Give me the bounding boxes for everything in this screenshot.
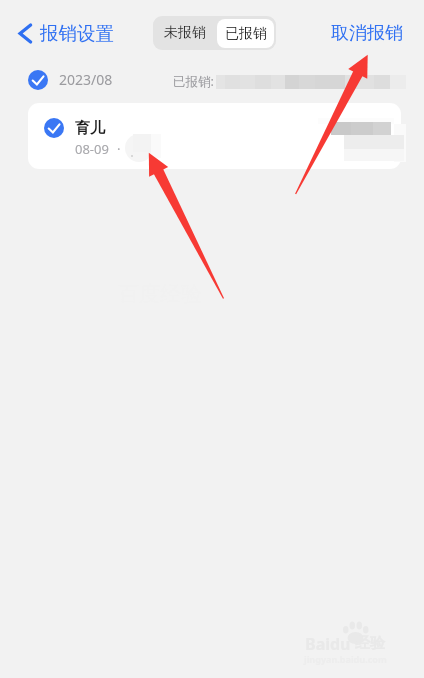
staticText: 育儿	[75, 119, 105, 138]
staticText: 经验	[355, 634, 385, 653]
staticText: 已报销	[225, 25, 267, 43]
other: Back	[16, 22, 33, 45]
staticText: ·	[117, 140, 121, 158]
button[interactable]	[28, 70, 48, 90]
button[interactable]: 育儿	[28, 103, 401, 169]
staticText: 取消报销	[331, 22, 403, 45]
staticText: Baidu	[305, 633, 351, 655]
staticText: 08-09	[75, 140, 109, 158]
button[interactable]: 取消报销	[331, 16, 403, 50]
staticText: 未报销	[164, 24, 206, 42]
button[interactable]: Back	[16, 16, 114, 50]
staticText: 报销设置	[40, 22, 114, 45]
staticText: 2023/08	[59, 70, 113, 89]
staticText: 已报销:	[173, 73, 214, 90]
button[interactable]: 已报销	[217, 19, 274, 48]
button[interactable]: 未报销	[153, 16, 217, 50]
